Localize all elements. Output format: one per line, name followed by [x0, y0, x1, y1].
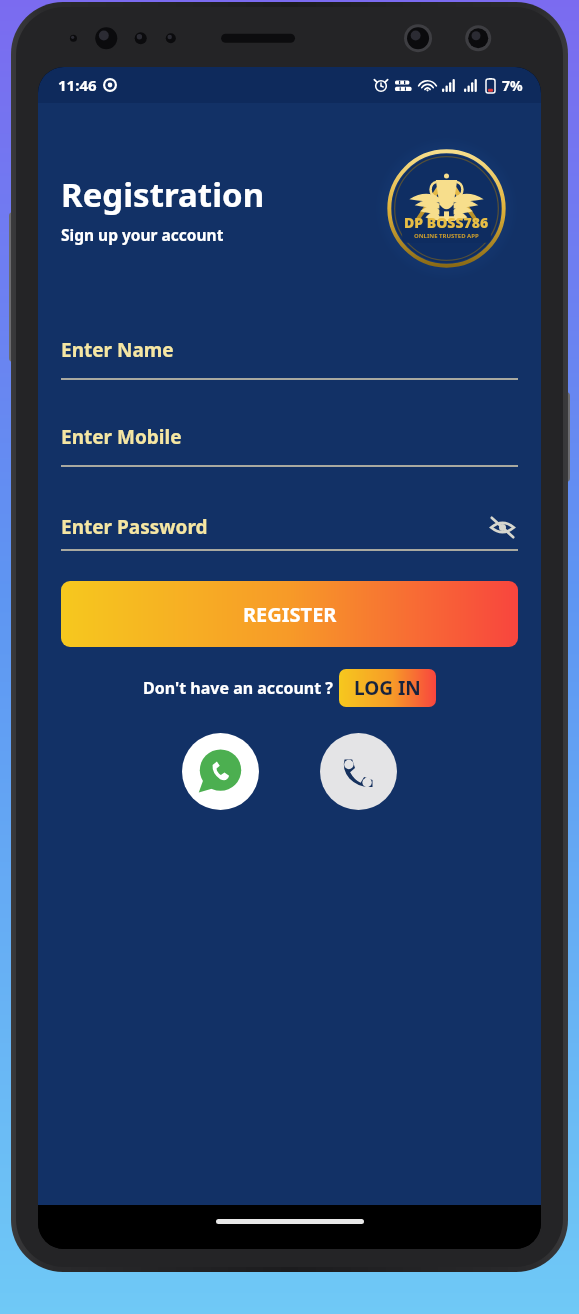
button[interactable]: WhatsApp — [182, 733, 259, 810]
staticText: Enter Name — [61, 337, 518, 363]
button[interactable]: Call — [320, 733, 397, 810]
staticText: Enter Password — [61, 514, 486, 540]
staticText: ONLINE TRUSTED APP — [414, 232, 479, 240]
staticText: REGISTER — [243, 601, 337, 628]
button[interactable]: LOG IN — [339, 669, 436, 707]
staticText: LOG IN — [354, 675, 421, 701]
staticText: 7% — [502, 76, 523, 95]
button[interactable]: Enter Name — [61, 337, 518, 380]
button[interactable]: Enter Password — [61, 511, 518, 551]
button[interactable]: REGISTER — [61, 581, 518, 647]
staticText: Enter Mobile — [61, 424, 518, 450]
staticText: 11:46 — [58, 75, 97, 95]
button[interactable]: Enter Mobile — [61, 424, 518, 467]
staticText: Sign up your account — [61, 224, 224, 245]
staticText: Don't have an account ? — [143, 677, 333, 699]
staticText: DP BOSS786 — [404, 213, 489, 232]
staticText: Registration — [61, 172, 265, 217]
button[interactable]: Show password — [486, 511, 518, 543]
